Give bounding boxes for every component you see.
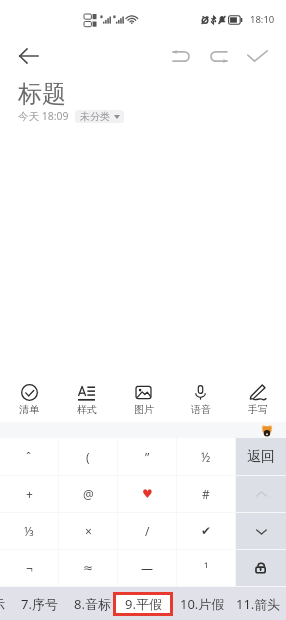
button[interactable]: Undo [164,39,198,73]
button[interactable]: Lock [236,550,286,586]
button[interactable]: ♥ [118,476,176,512]
button[interactable]: 手写 [229,382,286,422]
staticText: ¬ [26,560,33,576]
button[interactable]: / [118,513,176,549]
staticText: ( [86,449,90,465]
button[interactable]: 7.序号 [11,587,67,620]
staticText: 10.片假 [180,595,225,613]
staticText: 9.平假 [125,595,162,613]
button[interactable]: 样式 [58,382,115,422]
staticText: ½ [201,449,211,465]
staticText: 清单 [19,403,39,416]
button[interactable]: # [177,476,235,512]
button[interactable]: Page down [236,513,286,549]
staticText: — [141,560,154,576]
button[interactable]: 6.标示 [0,587,14,620]
button[interactable]: 返回 [236,438,286,475]
button[interactable]: ⅓ [0,513,58,549]
button[interactable]: 语音 [172,382,229,422]
staticText: 手写 [248,403,268,416]
staticText: # [202,486,210,502]
staticText: 标题 [18,79,66,109]
button[interactable]: ˆ [0,438,58,475]
staticText: ⅓ [24,523,34,539]
button[interactable]: ≈ [59,550,117,586]
staticText: 8.音标 [74,595,111,613]
staticText: ✔ [201,524,212,538]
button[interactable]: ¹ [177,550,235,586]
staticText: ” [145,449,150,465]
button[interactable]: Redo [202,39,236,73]
staticText: 图片 [134,403,154,416]
button[interactable]: 清单 [0,382,58,422]
button[interactable]: ½ [177,438,235,475]
button[interactable]: — [118,550,176,586]
staticText: 语音 [191,403,211,416]
button[interactable]: @ [59,476,117,512]
button[interactable]: 9.平假 [116,595,170,613]
staticText: 今天 18:09 [18,109,69,123]
button[interactable]: Back [10,38,46,74]
button[interactable]: 11.箭头 [230,587,286,620]
staticText: ♥ [142,487,153,501]
staticText: × [85,523,92,539]
button[interactable]: ¬ [0,550,58,586]
staticText: ¹ [204,560,209,576]
staticText: 11.箭头 [236,595,281,613]
staticText: 18:10 [250,13,275,26]
button[interactable]: 未分类 [75,110,124,123]
staticText: ˆ [26,449,32,465]
button[interactable]: × [59,513,117,549]
staticText: / [145,523,150,539]
staticText: 未分类 [80,110,110,123]
staticText: 6.标示 [0,595,5,613]
button[interactable]: ✔ [177,513,235,549]
button[interactable]: + [0,476,58,512]
staticText: 返回 [247,448,275,466]
button[interactable]: ” [118,438,176,475]
staticText: 7.序号 [21,595,58,613]
staticText: @ [83,486,94,502]
button[interactable]: ( [59,438,117,475]
button[interactable]: 8.音标 [64,587,120,620]
staticText: 样式 [77,403,97,416]
staticText: + [26,486,33,502]
button[interactable]: 10.片假 [174,587,230,620]
staticText: ≈ [83,561,94,575]
button[interactable]: 图片 [115,382,172,422]
button[interactable]: Done [240,39,274,73]
